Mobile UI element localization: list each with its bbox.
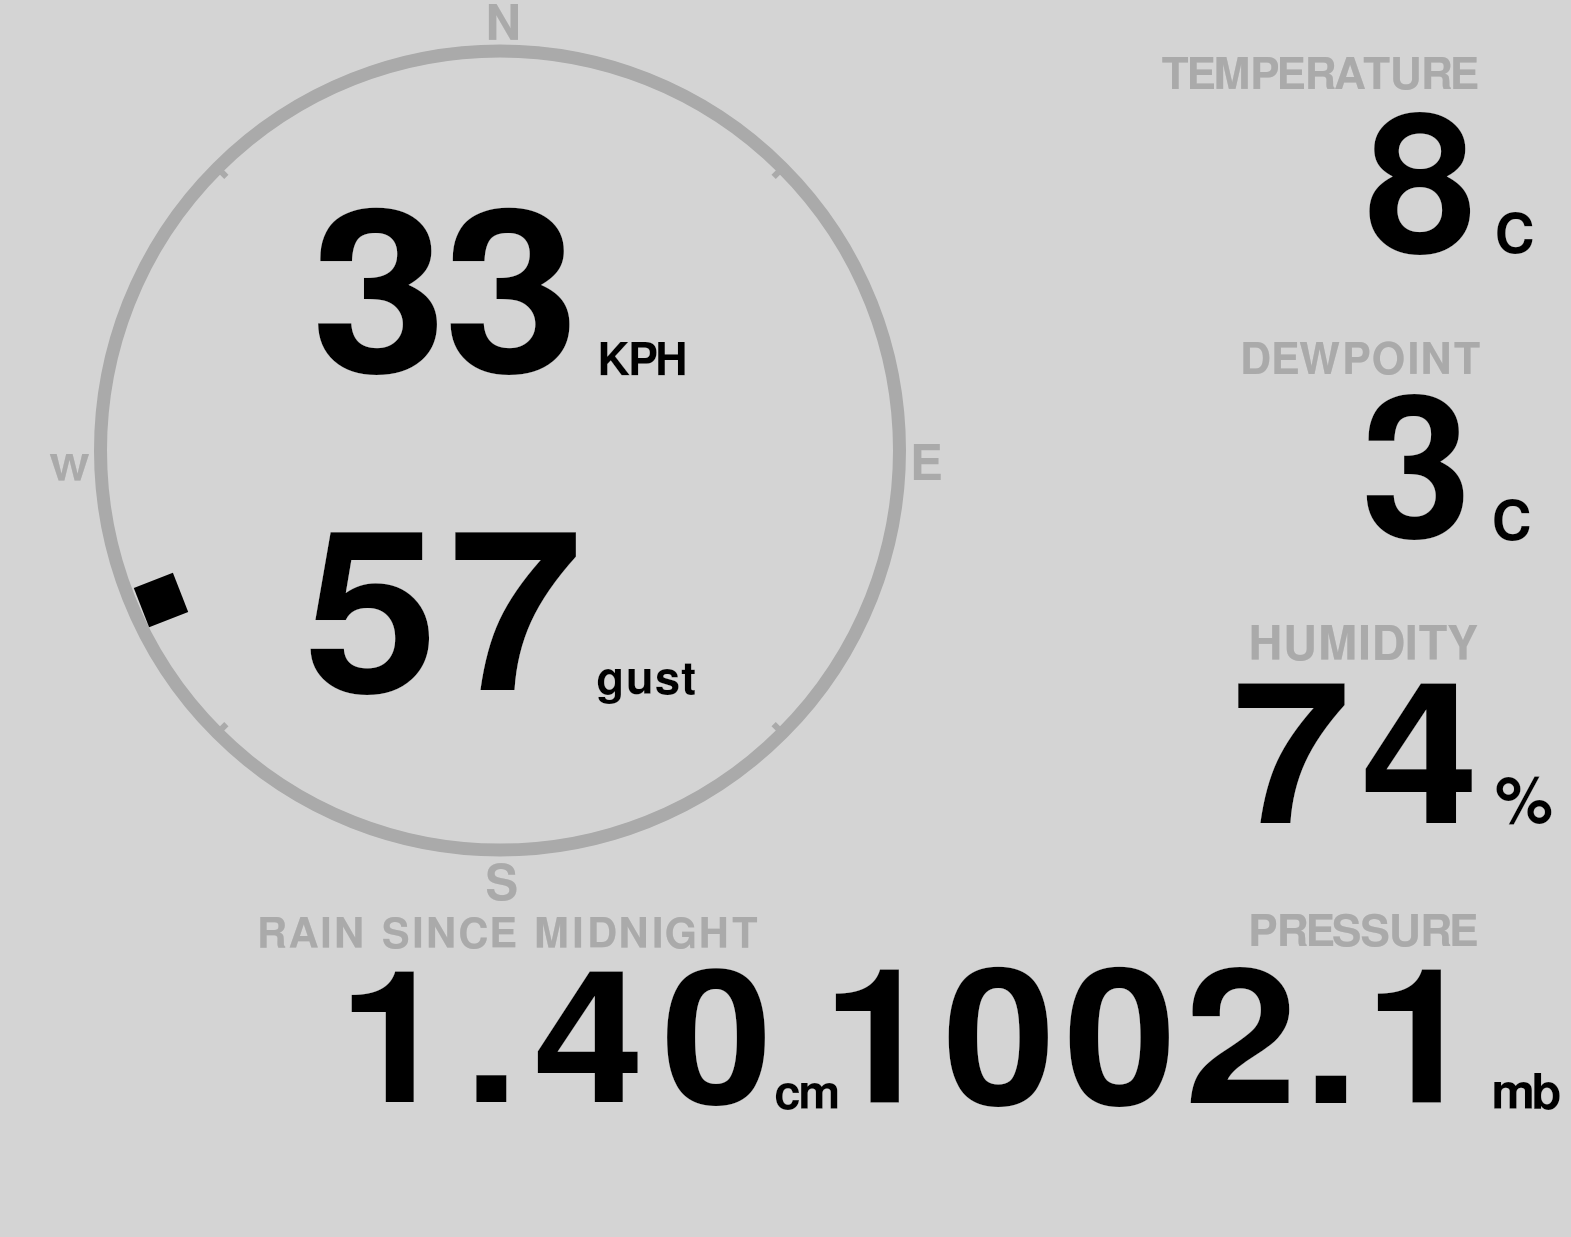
staticText: N xyxy=(485,1,522,50)
staticText: cm xyxy=(774,1071,839,1118)
button[interactable]: Pressure 1002.1 millibars xyxy=(1150,900,1571,1130)
staticText: 1.40 xyxy=(338,955,790,1139)
staticText: PRESSURE xyxy=(1248,911,1478,955)
staticText: KPH xyxy=(597,339,687,384)
button[interactable]: Rain since midnight 1.40 cm xyxy=(250,905,850,1130)
staticText: DEWPOINT xyxy=(1240,340,1483,383)
button[interactable]: Dewpoint 3 degrees Celsius xyxy=(1150,330,1571,560)
staticText: TEMPERATURE xyxy=(1161,54,1478,98)
staticText: C xyxy=(1495,209,1535,264)
staticText: RAIN SINCE MIDNIGHT xyxy=(257,915,761,957)
staticText: 1002.1 xyxy=(822,954,1486,1141)
staticText: 57 xyxy=(304,512,593,734)
button[interactable]: Wind speed 33 KPH, gust 57, direction we… xyxy=(95,45,905,855)
staticText: C xyxy=(1492,496,1532,551)
staticText: HUMIDITY xyxy=(1248,623,1478,670)
staticText: gust xyxy=(596,658,698,704)
staticText: 74 xyxy=(1232,666,1489,862)
button[interactable]: Humidity 74 percent xyxy=(1150,612,1571,842)
staticText: % xyxy=(1495,771,1554,836)
staticText: E xyxy=(910,441,943,490)
staticText: 8 xyxy=(1365,98,1477,289)
staticText: 33 xyxy=(311,191,577,415)
staticText: W xyxy=(49,451,90,488)
button[interactable]: Temperature 8 degrees Celsius xyxy=(1150,45,1571,275)
staticText: S xyxy=(485,861,519,910)
staticText: 3 xyxy=(1361,380,1472,575)
staticText: mb xyxy=(1491,1070,1558,1119)
